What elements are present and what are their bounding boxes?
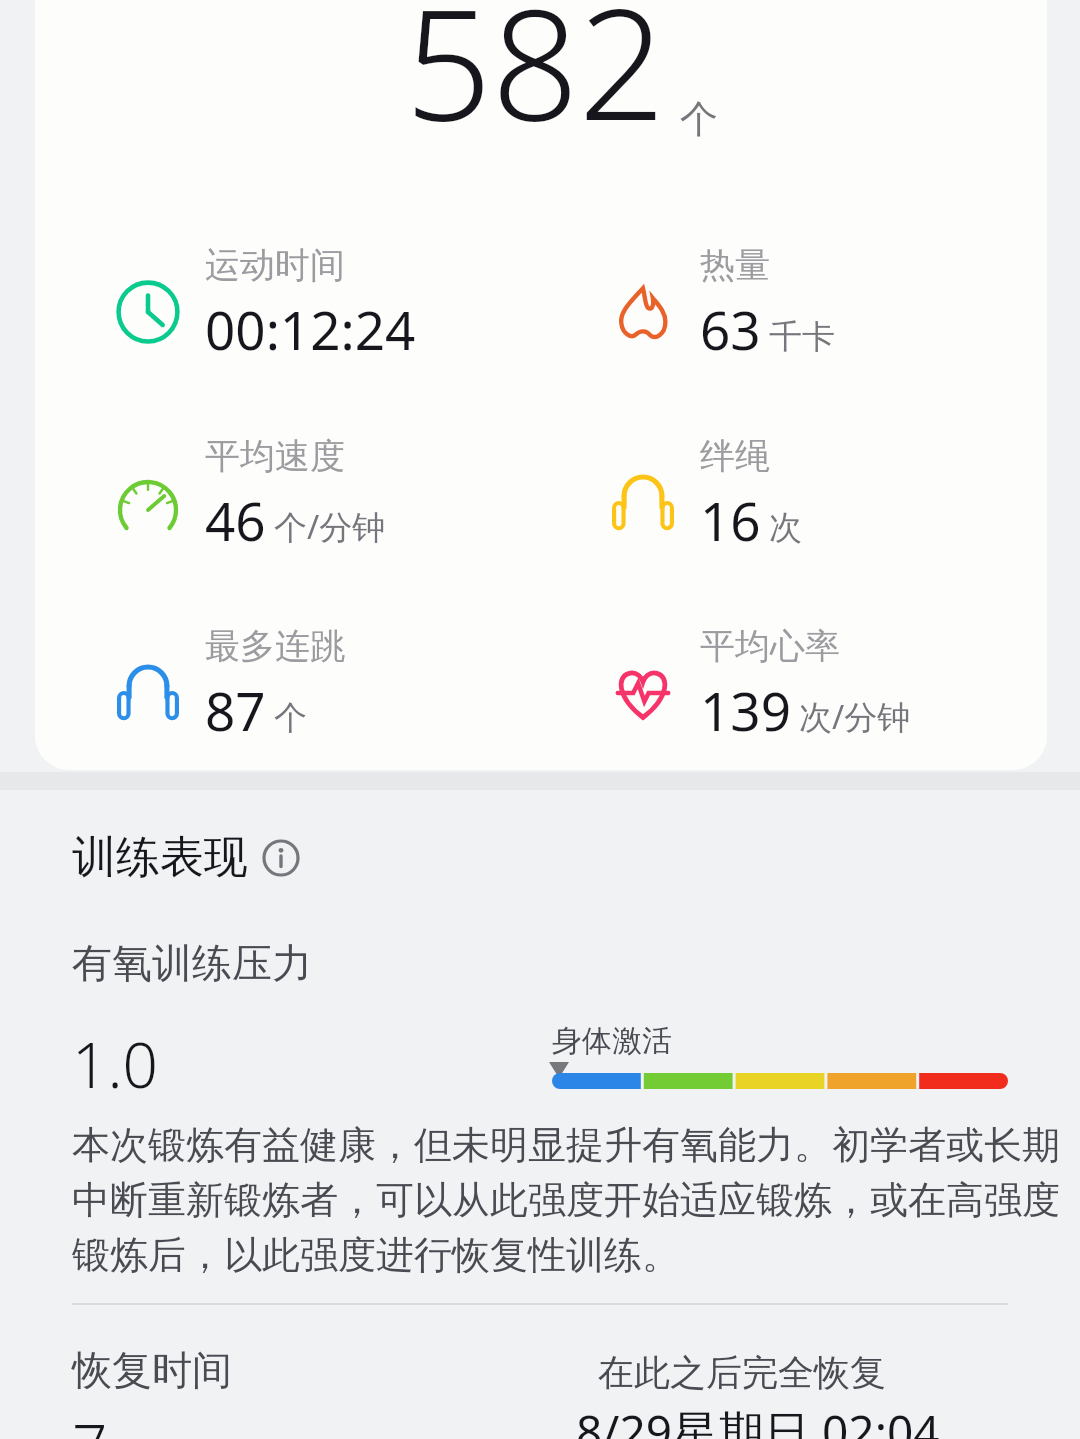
button[interactable]: 热量 [608, 243, 835, 365]
staticText: 运动时间 [205, 243, 345, 287]
staticText: 平均心率 [700, 624, 840, 668]
staticText: 8/29星期日 02:04 [576, 1400, 940, 1439]
staticText: 在此之后完全恢复 [598, 1350, 886, 1395]
button[interactable]: 绊绳 [608, 434, 802, 556]
other: Info [262, 839, 300, 877]
staticText: 个 [680, 95, 718, 143]
button[interactable]: 最多连跳 [113, 624, 345, 746]
staticText: 恢复时间 [72, 1345, 232, 1395]
staticText: 16 [700, 484, 761, 556]
staticText: 个 [274, 697, 307, 739]
staticText: 个/分钟 [274, 504, 386, 549]
staticText: 00:12:24 [205, 293, 416, 365]
button[interactable]: 平均心率 [608, 624, 911, 746]
staticText: 次/分钟 [799, 694, 911, 739]
staticText: 582 [405, 0, 666, 165]
staticText: 次 [769, 507, 802, 549]
staticText: 锻炼后，以此强度进行恢复性训练。 [72, 1231, 680, 1279]
staticText: 平均速度 [205, 434, 345, 478]
staticText: 63 [700, 293, 761, 365]
staticText: 1.0 [72, 1022, 158, 1106]
staticText: 7 [72, 1404, 108, 1439]
staticText: 训练表现 [72, 830, 248, 885]
button[interactable] [35, 0, 1047, 770]
staticText: 绊绳 [700, 434, 770, 478]
staticText: 139 [700, 674, 791, 746]
button[interactable]: 训练表现 [72, 830, 300, 885]
staticText: 热量 [700, 243, 770, 287]
staticText: 本次锻炼有益健康，但未明显提升有氧能力。初学者或长期 [72, 1121, 1060, 1169]
staticText: 有氧训练压力 [72, 938, 312, 988]
button[interactable]: 运动时间 [113, 243, 416, 365]
button[interactable]: 平均速度 [113, 434, 386, 556]
staticText: 87 [205, 674, 266, 746]
staticText: 千卡 [769, 316, 835, 358]
staticText: 46 [205, 484, 266, 556]
staticText: 中断重新锻炼者，可以从此强度开始适应锻炼，或在高强度 [72, 1176, 1060, 1224]
staticText: 最多连跳 [205, 624, 345, 668]
staticText: 身体激活 [552, 1022, 672, 1060]
